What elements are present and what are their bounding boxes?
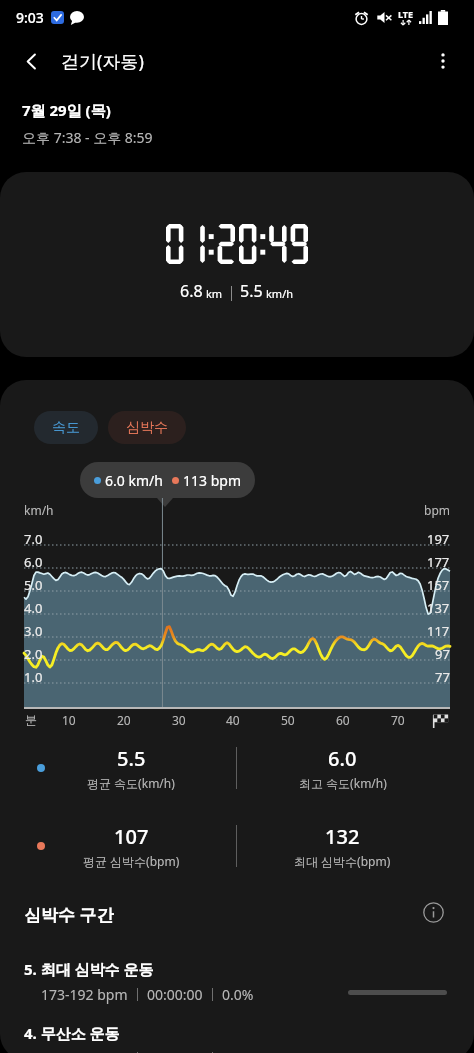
staticText: 50 [281, 712, 295, 728]
staticText: 97 [435, 645, 450, 663]
staticText: 5.5 [240, 280, 263, 302]
staticText: 걷기(자동) [61, 49, 144, 74]
staticText: 분 [25, 712, 37, 727]
button[interactable]: 속도 [34, 411, 98, 444]
staticText: 6.0 [328, 745, 357, 772]
button[interactable]: 5. 최대 심박수 운동 [0, 959, 474, 1021]
staticText: 157 [427, 576, 450, 594]
staticText: km [206, 286, 223, 301]
button[interactable]: 심박수 [108, 411, 186, 444]
button[interactable]: More options [420, 38, 466, 84]
staticText: 137 [427, 599, 450, 617]
staticText: 20 [117, 712, 131, 728]
staticText: 113 bpm [183, 471, 241, 490]
staticText: 심박수 구간 [24, 903, 114, 926]
staticText: 4. 무산소 운동 [24, 1023, 120, 1043]
staticText: 2.0 [24, 645, 43, 663]
staticText: 심박수 [126, 419, 168, 437]
staticText: 6.0 [24, 553, 43, 571]
button[interactable]: 4. 무산소 운동 [0, 1023, 474, 1053]
staticText: 오후 7:38 - 오후 8:59 [22, 128, 153, 147]
staticText: 1.0 [24, 668, 43, 686]
staticText: 6.8 [180, 280, 203, 302]
staticText: 107 [114, 823, 149, 850]
button[interactable]: Back [8, 38, 54, 84]
staticText: 평균 심박수(bpm) [83, 853, 180, 869]
staticText: 40 [226, 712, 240, 728]
staticText: km/h [24, 502, 54, 518]
staticText: 3.0 [24, 622, 43, 640]
staticText: 117 [427, 622, 450, 640]
staticText: 5. 최대 심박수 운동 [24, 959, 154, 979]
staticText: bpm [424, 502, 450, 518]
staticText: 177 [427, 553, 450, 571]
staticText: LTE [398, 8, 414, 20]
staticText: 0.0% [222, 985, 254, 1004]
staticText: 00:00:00 [147, 985, 203, 1004]
button[interactable]: Info [416, 895, 450, 929]
staticText: 5.5 [117, 745, 146, 772]
staticText: 평균 속도(km/h) [87, 775, 175, 791]
staticText: 132 [325, 823, 360, 850]
staticText: 7.0 [24, 530, 43, 548]
button[interactable]: 6.8 [0, 172, 474, 357]
staticText: 최고 속도(km/h) [299, 775, 387, 791]
staticText: 197 [427, 530, 450, 548]
staticText: 속도 [52, 419, 80, 437]
staticText: 70 [391, 712, 405, 728]
staticText: 30 [172, 712, 186, 728]
staticText: 7월 29일 (목) [22, 100, 111, 120]
staticText: 60 [336, 712, 350, 728]
staticText: 4.0 [24, 599, 43, 617]
staticText: 10 [62, 712, 76, 728]
staticText: km/h [266, 286, 294, 301]
staticText: 최대 심박수(bpm) [294, 853, 391, 869]
staticText: 9:03 [16, 8, 44, 27]
staticText: 77 [435, 668, 450, 686]
staticText: 5.0 [24, 576, 43, 594]
staticText: 173-192 bpm [41, 985, 128, 1004]
staticText: 6.0 km/h [105, 471, 163, 490]
